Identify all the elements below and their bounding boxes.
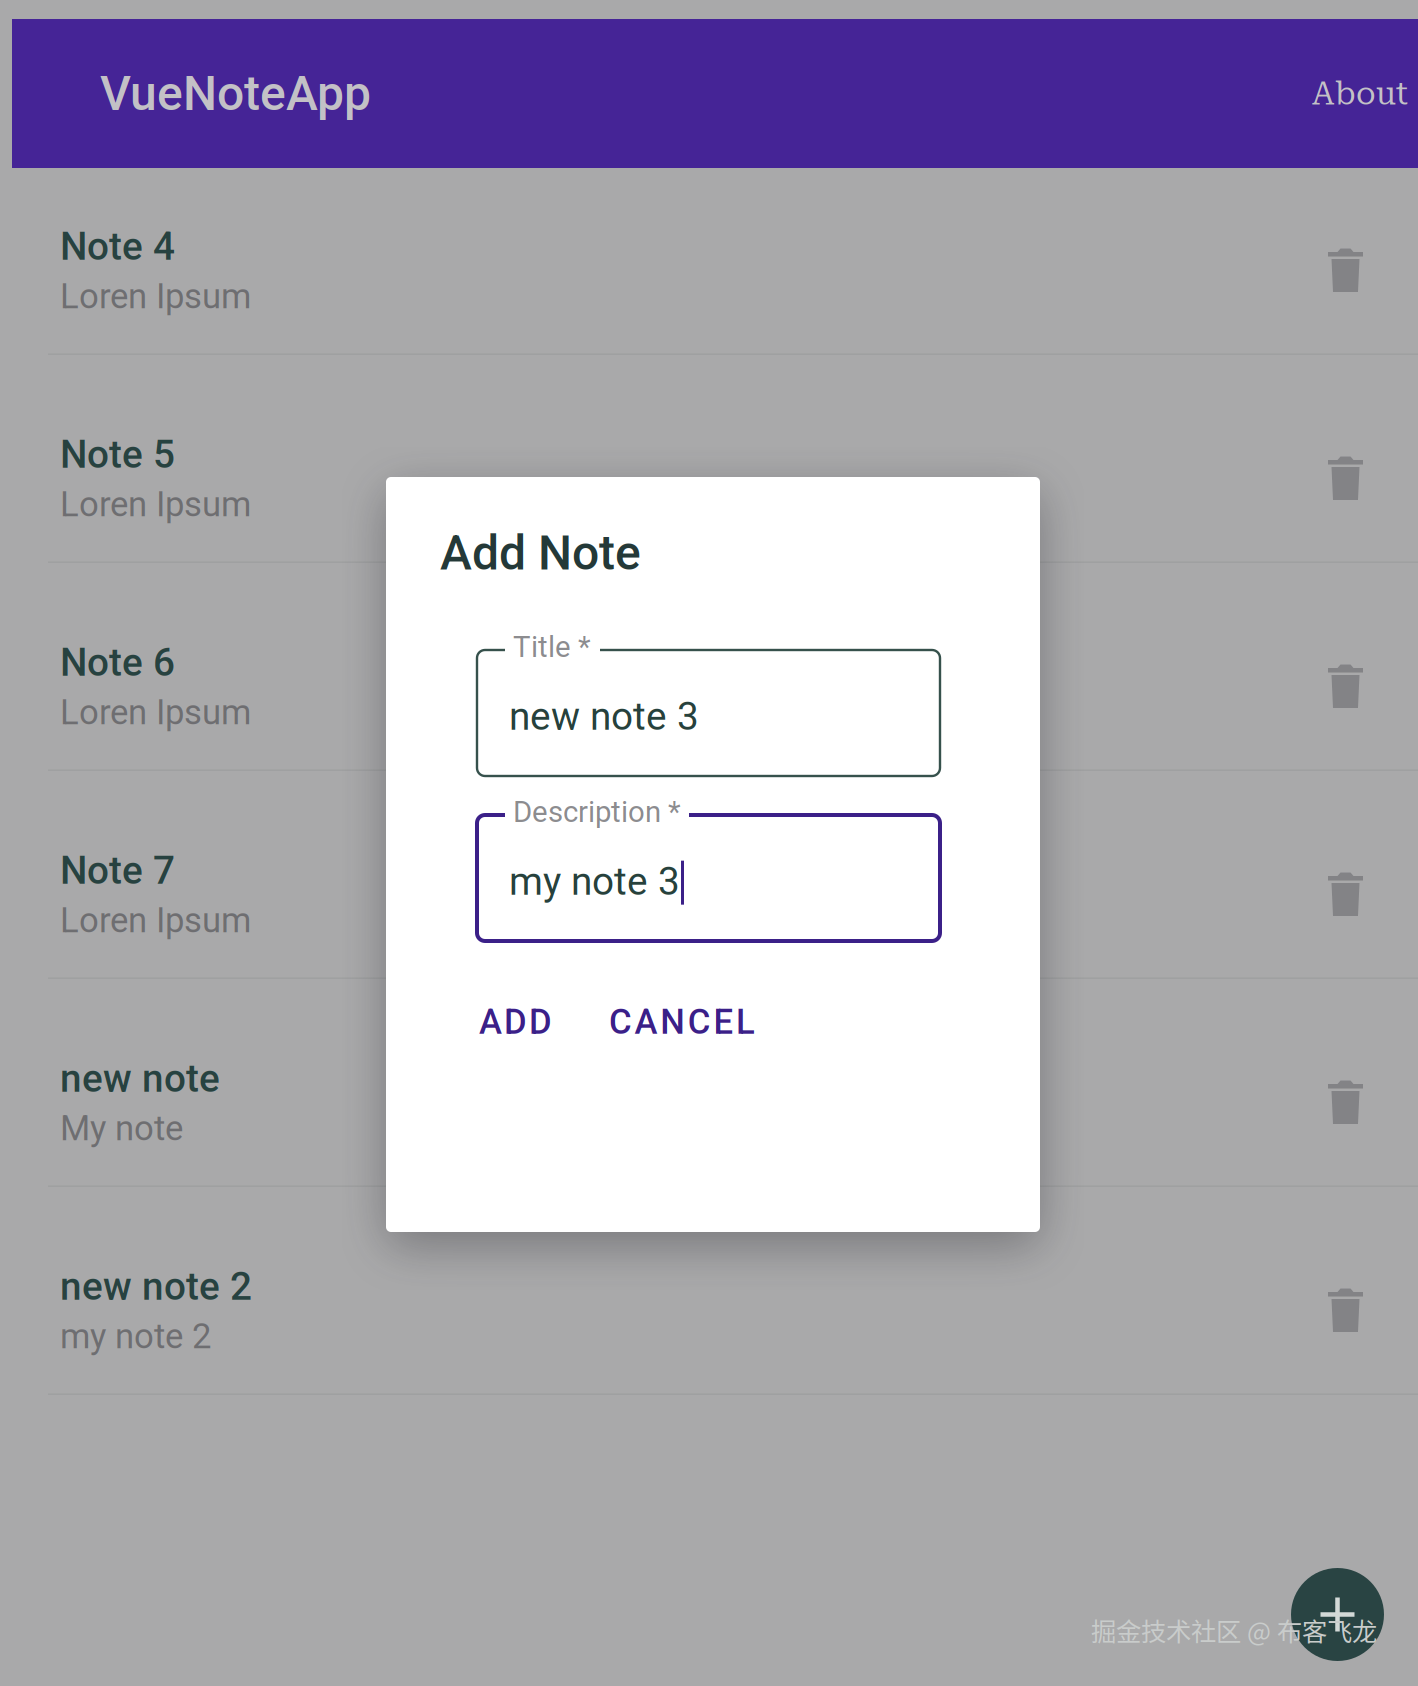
button[interactable]: new note 2 <box>0 1187 1418 1395</box>
button[interactable]: Delete Note 4 <box>1296 218 1395 322</box>
staticText: my note 3 <box>509 859 680 904</box>
button[interactable]: Delete Note 5 <box>1296 426 1395 530</box>
button[interactable]: Add note <box>1291 1568 1384 1661</box>
staticText: new note <box>60 1056 220 1101</box>
staticText: Note 7 <box>60 848 175 893</box>
staticText: Loren Ipsum <box>60 484 251 525</box>
button[interactable]: CANCEL <box>609 992 799 1052</box>
staticText: Note 6 <box>60 640 175 685</box>
staticText: VueNoteApp <box>100 65 371 122</box>
staticText: About <box>1312 75 1408 112</box>
staticText: Description * <box>513 795 681 829</box>
staticText: ADD <box>479 1002 552 1042</box>
button[interactable]: Note 6 <box>0 563 1418 771</box>
button[interactable]: Delete new note 2 <box>1296 1258 1395 1362</box>
staticText: 掘金技术社区 @ 布客飞龙 <box>1091 1612 1377 1648</box>
button[interactable]: Delete new note <box>1296 1050 1395 1154</box>
staticText: CANCEL <box>609 1002 755 1042</box>
staticText: Note 4 <box>60 224 175 269</box>
staticText: Add Note <box>440 525 641 581</box>
staticText: new note 2 <box>60 1264 252 1309</box>
button[interactable]: Delete Note 7 <box>1296 842 1395 946</box>
staticText: Loren Ipsum <box>60 276 251 317</box>
button[interactable]: About <box>1312 19 1408 168</box>
button[interactable]: ADD <box>479 992 589 1052</box>
staticText: Loren Ipsum <box>60 900 251 941</box>
staticText: Title * <box>513 630 591 664</box>
staticText: My note <box>60 1108 183 1149</box>
staticText: new note 3 <box>509 694 699 739</box>
staticText: Note 5 <box>60 432 175 477</box>
staticText: my note 2 <box>60 1316 211 1357</box>
staticText: Loren Ipsum <box>60 692 251 733</box>
button[interactable]: Note 7 <box>0 771 1418 979</box>
button[interactable]: new note <box>0 979 1418 1187</box>
button[interactable]: Note 5 <box>0 355 1418 563</box>
button[interactable]: Delete Note 6 <box>1296 634 1395 738</box>
button[interactable]: Note 4 <box>0 147 1418 355</box>
